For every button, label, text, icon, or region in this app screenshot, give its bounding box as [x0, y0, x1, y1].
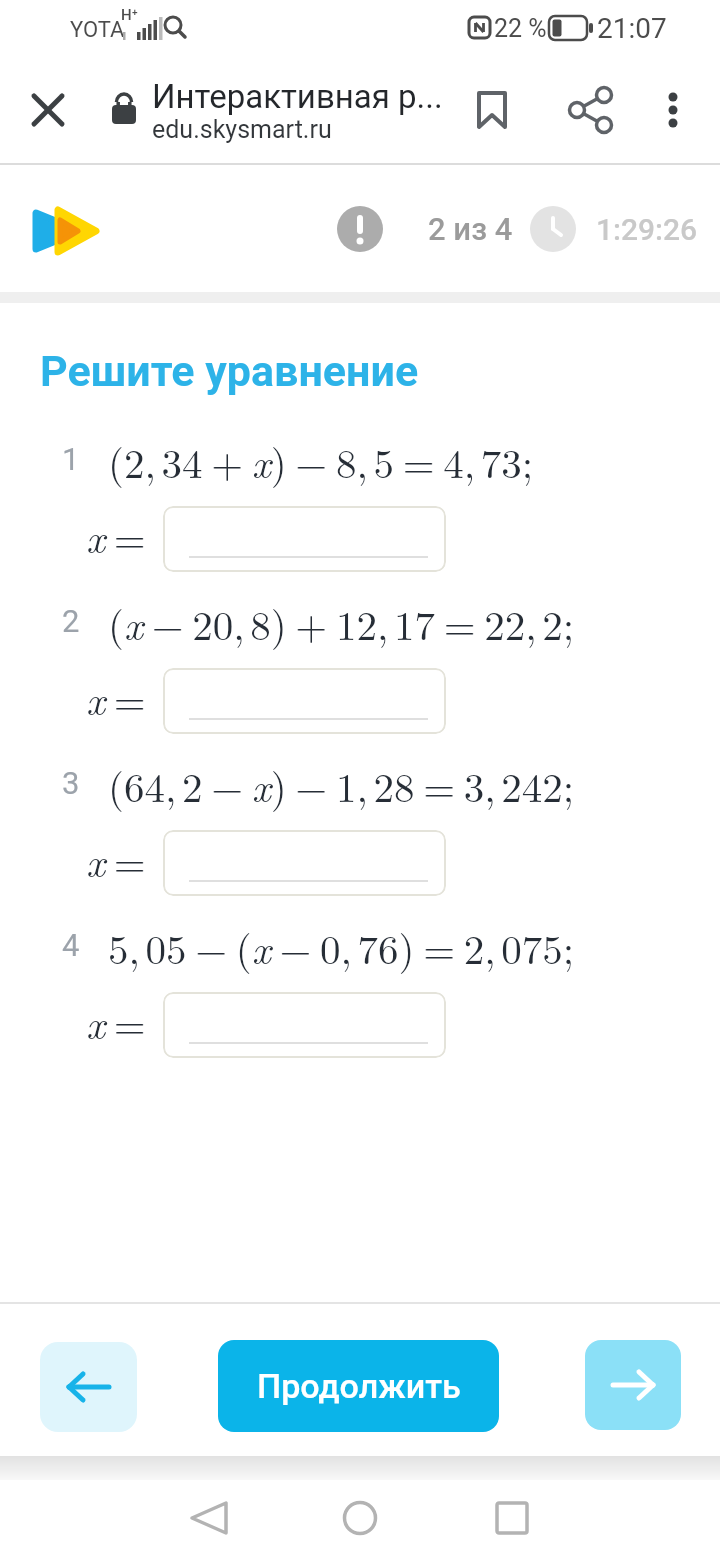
button[interactable] [566, 86, 614, 134]
staticText: H⁺ [121, 6, 138, 24]
button[interactable] [163, 668, 446, 734]
staticText: 4 [62, 927, 80, 963]
staticText: x = [86, 669, 146, 727]
button[interactable] [660, 92, 686, 128]
staticText: 22 % [494, 14, 547, 43]
button[interactable] [163, 830, 446, 896]
button[interactable]: Продолжить [218, 1340, 499, 1432]
button[interactable] [585, 1340, 681, 1430]
staticText: Решите уравнение [40, 346, 419, 396]
button[interactable] [163, 506, 446, 572]
staticText: Продолжить [257, 1366, 461, 1406]
button[interactable] [476, 90, 508, 130]
button[interactable]: Интерактивная р... [0, 0, 291, 39]
staticText: x = [86, 507, 146, 565]
button[interactable] [30, 92, 66, 128]
staticText: 2 [62, 603, 80, 639]
staticText: 1 [62, 441, 80, 477]
staticText: YOTA [70, 17, 125, 43]
button[interactable] [30, 205, 100, 257]
button[interactable] [163, 992, 446, 1058]
button[interactable] [188, 1500, 230, 1536]
staticText: x = [86, 831, 146, 889]
staticText: x = [86, 993, 146, 1051]
staticText: 2 из 4 [428, 211, 513, 247]
staticText: 1:29:26 [596, 212, 698, 247]
staticText: (64, 2 − x) − 1, 28 = 3, 242; [108, 756, 575, 814]
button[interactable] [337, 206, 383, 252]
button[interactable] [163, 15, 189, 41]
staticText: 21:07 [597, 12, 667, 45]
staticText: edu.skysmart.ru [152, 115, 332, 144]
staticText: (2, 34 + x) − 8, 5 = 4, 73; [108, 432, 534, 490]
staticText: 3 [62, 765, 80, 801]
button[interactable] [495, 1501, 529, 1535]
button[interactable] [342, 1500, 378, 1536]
button[interactable] [40, 1342, 137, 1432]
staticText: (x − 20, 8) + 12, 17 = 22, 2; [108, 594, 575, 652]
staticText: 5, 05 − (x − 0, 76) = 2, 075; [108, 918, 575, 976]
